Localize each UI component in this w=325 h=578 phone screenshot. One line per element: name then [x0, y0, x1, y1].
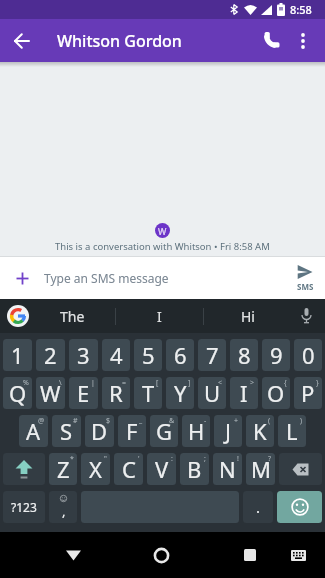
- button[interactable]: 5: [134, 339, 162, 371]
- staticText: F: [126, 416, 138, 446]
- button[interactable]: I: [116, 299, 203, 333]
- button[interactable]: .: [243, 491, 273, 523]
- staticText: ;: [204, 454, 206, 464]
- staticText: Hi: [241, 307, 255, 326]
- button[interactable]: W: [36, 377, 65, 409]
- button[interactable]: Type an SMS message: [44, 270, 285, 286]
- button[interactable]: Y: [166, 377, 194, 409]
- staticText: Y: [174, 378, 187, 408]
- button[interactable]: U: [198, 377, 226, 409]
- button[interactable]: 9: [262, 339, 290, 371]
- button[interactable]: 4: [102, 339, 130, 371]
- staticText: #: [73, 416, 78, 426]
- button[interactable]: I: [230, 377, 258, 409]
- staticText: W: [40, 378, 61, 408]
- button[interactable]: Hi: [204, 299, 291, 333]
- button[interactable]: 1: [3, 339, 32, 371]
- button[interactable]: B: [180, 453, 209, 485]
- button[interactable]: J: [214, 415, 242, 447]
- staticText: 7: [206, 340, 219, 370]
- staticText: 8:58: [290, 2, 312, 17]
- staticText: 8: [238, 340, 251, 370]
- staticText: B: [187, 454, 202, 484]
- button[interactable]: 0: [294, 339, 322, 371]
- staticText: I: [157, 307, 162, 326]
- staticText: (: [268, 416, 271, 426]
- staticText: P: [301, 378, 315, 408]
- staticText: @: [38, 416, 45, 426]
- staticText: G: [156, 416, 173, 446]
- button[interactable]: ?123: [3, 491, 45, 523]
- staticText: >: [250, 378, 255, 388]
- button[interactable]: [0, 19, 44, 62]
- button[interactable]: Q: [3, 377, 32, 409]
- button[interactable]: 6: [166, 339, 194, 371]
- button[interactable]: [3, 453, 45, 485]
- button[interactable]: The: [29, 299, 115, 333]
- button[interactable]: C: [114, 453, 143, 485]
- button[interactable]: [0, 257, 44, 299]
- button[interactable]: G: [150, 415, 178, 447]
- staticText: T: [142, 378, 155, 408]
- staticText: ): [300, 416, 303, 426]
- staticText: :: [171, 454, 173, 464]
- button[interactable]: [254, 19, 288, 62]
- staticText: J: [225, 416, 232, 446]
- button[interactable]: O: [262, 377, 290, 409]
- staticText: V: [155, 454, 169, 484]
- staticText: 0: [302, 340, 315, 370]
- button[interactable]: 3: [69, 339, 98, 371]
- staticText: ,: [62, 502, 66, 520]
- button[interactable]: S: [52, 415, 81, 447]
- button[interactable]: Z: [49, 453, 77, 485]
- button[interactable]: L: [278, 415, 306, 447]
- staticText: D: [91, 416, 108, 446]
- staticText: -: [204, 416, 207, 426]
- button[interactable]: SMS: [285, 257, 325, 299]
- staticText: |: [91, 378, 95, 388]
- staticText: ?: [268, 454, 272, 464]
- staticText: 4: [110, 340, 123, 370]
- button[interactable]: 8: [230, 339, 258, 371]
- button[interactable]: A: [19, 415, 48, 447]
- staticText: The: [60, 307, 85, 326]
- staticText: $: [106, 416, 111, 426]
- button[interactable]: P: [294, 377, 322, 409]
- button[interactable]: T: [134, 377, 162, 409]
- staticText: S: [60, 416, 73, 446]
- staticText: }: [316, 378, 319, 388]
- button[interactable]: [277, 491, 322, 523]
- button[interactable]: 7: [198, 339, 226, 371]
- staticText: _: [139, 416, 143, 426]
- button[interactable]: [58, 532, 88, 578]
- button[interactable]: [291, 299, 321, 333]
- staticText: U: [204, 378, 221, 408]
- button[interactable]: [235, 532, 265, 578]
- staticText: H: [188, 416, 205, 446]
- button[interactable]: D: [85, 415, 114, 447]
- staticText: SMS: [297, 281, 314, 292]
- button[interactable]: ,: [49, 491, 77, 523]
- staticText: 9: [270, 340, 283, 370]
- button[interactable]: [7, 305, 29, 327]
- button[interactable]: V: [147, 453, 176, 485]
- staticText: &: [169, 416, 175, 426]
- staticText: N: [219, 454, 236, 484]
- button[interactable]: [288, 19, 318, 62]
- staticText: A: [26, 416, 41, 446]
- button[interactable]: R: [102, 377, 130, 409]
- staticText: \: [59, 378, 62, 388]
- button[interactable]: [279, 453, 322, 485]
- button[interactable]: M: [246, 453, 275, 485]
- button[interactable]: X: [81, 453, 110, 485]
- staticText: C: [122, 454, 136, 484]
- button[interactable]: 2: [36, 339, 65, 371]
- button[interactable]: [146, 532, 177, 578]
- button[interactable]: F: [118, 415, 146, 447]
- button[interactable]: E: [69, 377, 98, 409]
- button[interactable]: N: [213, 453, 242, 485]
- button[interactable]: H: [182, 415, 210, 447]
- button[interactable]: [283, 532, 313, 578]
- button[interactable]: K: [246, 415, 274, 447]
